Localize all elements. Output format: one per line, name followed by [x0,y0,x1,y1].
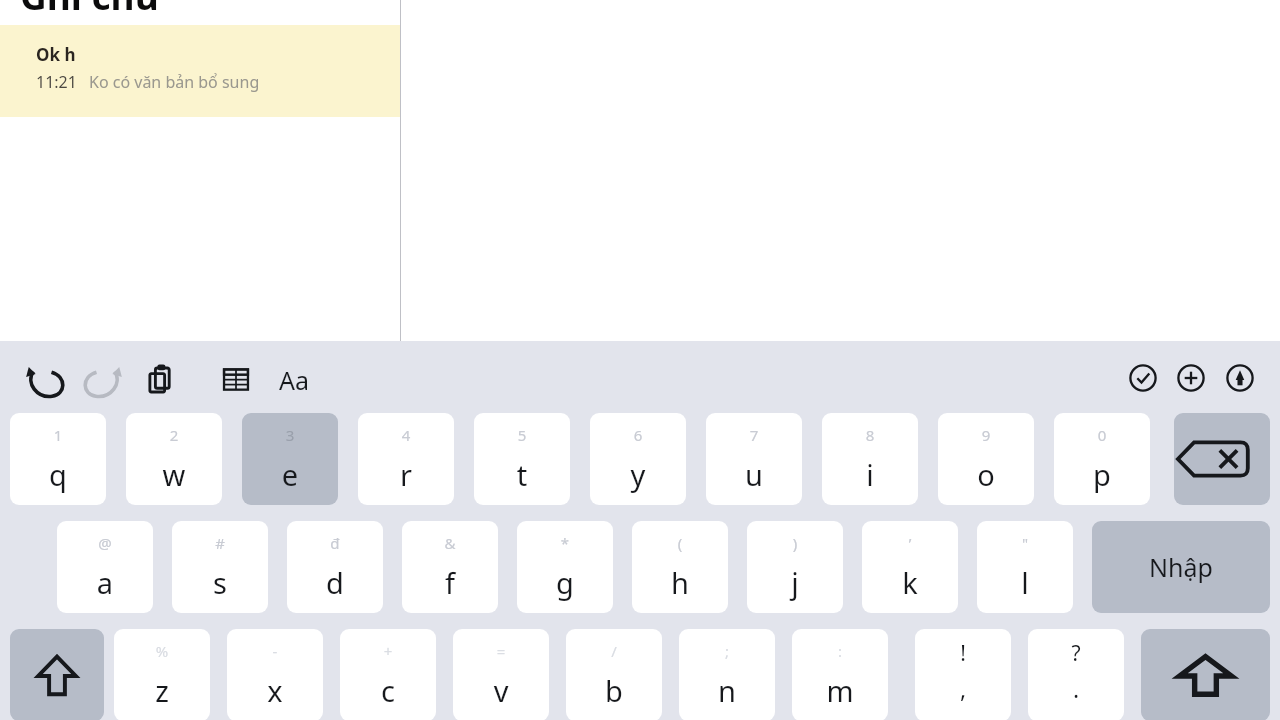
staticText: 1 [10,425,106,445]
button[interactable]: Paste [137,357,183,403]
button[interactable]: # [172,521,268,613]
staticText: & [402,533,498,553]
staticText: f [402,563,498,602]
button[interactable]: ! [915,629,1011,720]
button[interactable]: Nhập [1092,521,1270,613]
button[interactable]: : [792,629,888,720]
button[interactable]: % [114,629,210,720]
button[interactable]: 9 [938,413,1034,505]
button[interactable]: 1 [10,413,106,505]
staticText: Ko có văn bản bổ sung [89,71,260,93]
staticText: Ghi chú [20,0,159,14]
staticText: t [474,455,570,494]
staticText: . [1028,673,1124,704]
button[interactable]: ’ [862,521,958,613]
staticText: % [114,641,210,661]
button[interactable]: Draw [1219,357,1261,399]
staticText: n [679,671,775,710]
staticText: 2 [126,425,222,445]
button[interactable]: 5 [474,413,570,505]
button[interactable]: Ok h [0,25,400,117]
button[interactable]: 2 [126,413,222,505]
button[interactable]: 0 [1054,413,1150,505]
button[interactable]: Backspace [1174,413,1270,505]
staticText: q [10,455,106,494]
button[interactable]: ? [1028,629,1124,720]
button[interactable]: - [227,629,323,720]
staticText: = [453,641,549,661]
staticText: , [915,673,1011,704]
staticText: # [172,533,268,553]
button[interactable]: Redo [78,357,128,407]
staticText: ( [632,533,728,553]
staticText: đ [287,533,383,553]
button[interactable]: 4 [358,413,454,505]
staticText: Aa [279,363,310,397]
staticText: e [242,455,338,494]
button[interactable]: 8 [822,413,918,505]
staticText: " [977,533,1073,553]
staticText: v [453,671,549,710]
button[interactable]: 6 [590,413,686,505]
staticText: g [517,563,613,602]
button[interactable]: đ [287,521,383,613]
button[interactable]: Table [213,357,259,403]
staticText: ! [915,639,1011,668]
staticText: @ [57,533,153,553]
staticText: ? [1028,639,1124,668]
staticText: p [1054,455,1150,494]
staticText: b [566,671,662,710]
staticText: Ok h [36,43,76,66]
button[interactable]: @ [57,521,153,613]
staticText: m [792,671,888,710]
staticText: j [747,563,843,602]
staticText: 8 [822,425,918,445]
button[interactable]: Shift [10,629,104,720]
button[interactable]: " [977,521,1073,613]
staticText: l [977,563,1073,602]
staticText: s [172,563,268,602]
staticText: r [358,455,454,494]
staticText: k [862,563,958,602]
staticText: 9 [938,425,1034,445]
staticText: x [227,671,323,710]
button[interactable]: = [453,629,549,720]
button[interactable]: + [340,629,436,720]
button[interactable]: Shift [1141,629,1270,720]
staticText: a [57,563,153,602]
button[interactable]: ; [679,629,775,720]
staticText: * [517,533,613,553]
button[interactable]: Undo [20,357,70,407]
button[interactable]: Aa [272,361,316,399]
button[interactable]: Done [1122,357,1164,399]
staticText: i [822,455,918,494]
button[interactable]: / [566,629,662,720]
staticText: 5 [474,425,570,445]
staticText: / [566,641,662,661]
staticText: o [938,455,1034,494]
staticText: u [706,455,802,494]
staticText: c [340,671,436,710]
staticText: 4 [358,425,454,445]
staticText: y [590,455,686,494]
staticText: ) [747,533,843,553]
staticText: 11:21 [36,71,77,93]
button[interactable]: * [517,521,613,613]
staticText: Nhập [1149,550,1213,584]
button[interactable]: 3 [242,413,338,505]
staticText: 6 [590,425,686,445]
staticText: z [114,671,210,710]
staticText: d [287,563,383,602]
button[interactable]: ( [632,521,728,613]
staticText: 0 [1054,425,1150,445]
staticText: + [340,641,436,661]
button[interactable]: ) [747,521,843,613]
button[interactable]: Add [1170,357,1212,399]
button[interactable]: & [402,521,498,613]
staticText: h [632,563,728,602]
button[interactable]: 7 [706,413,802,505]
